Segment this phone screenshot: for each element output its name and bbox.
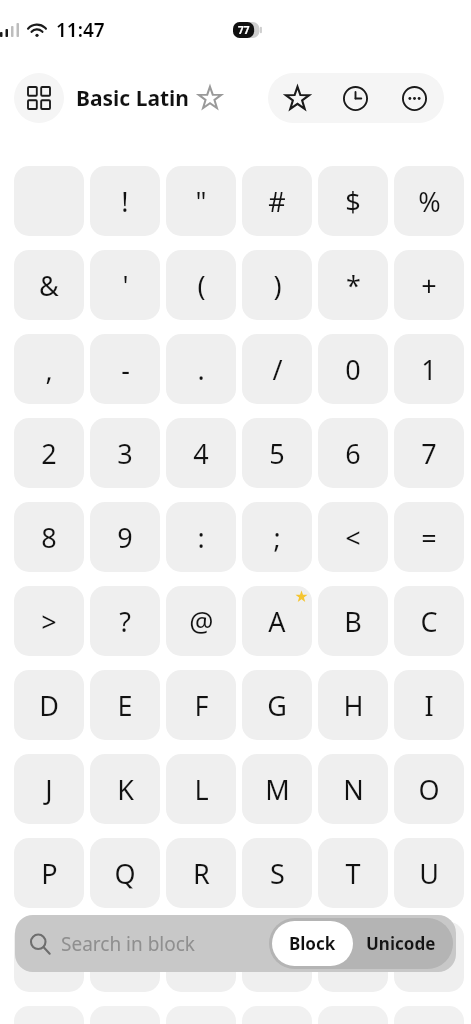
- button[interactable]: ': [90, 250, 160, 320]
- staticText: O: [418, 771, 440, 808]
- button[interactable]: G: [242, 670, 312, 740]
- button[interactable]: ?: [90, 586, 160, 656]
- button[interactable]: M: [242, 754, 312, 824]
- button[interactable]: Y: [242, 922, 312, 992]
- button[interactable]: Q: [90, 838, 160, 908]
- button[interactable]: ,: [14, 334, 84, 404]
- button[interactable]: @: [166, 586, 236, 656]
- button[interactable]: \: [14, 1006, 84, 1024]
- button[interactable]: 9: [90, 502, 160, 572]
- button[interactable]: !: [90, 166, 160, 236]
- staticText: .: [197, 351, 205, 388]
- button[interactable]: /: [242, 334, 312, 404]
- staticText: Unicode: [366, 932, 436, 955]
- button[interactable]: ": [166, 166, 236, 236]
- staticText: Block: [289, 932, 336, 955]
- button[interactable]: .: [166, 334, 236, 404]
- button[interactable]: [: [394, 922, 464, 992]
- button[interactable]: [14, 166, 84, 236]
- button[interactable]: A: [242, 586, 312, 656]
- button[interactable]: J: [14, 754, 84, 824]
- button[interactable]: Recent: [326, 73, 384, 123]
- button[interactable]: Unicode: [356, 921, 453, 966]
- staticText: 1: [421, 351, 437, 388]
- button[interactable]: P: [14, 838, 84, 908]
- button[interactable]: Basic Latin: [76, 84, 190, 113]
- staticText: ": [195, 183, 207, 220]
- button[interactable]: -: [90, 334, 160, 404]
- button[interactable]: H: [318, 670, 388, 740]
- staticText: M: [265, 771, 290, 808]
- button[interactable]: T: [318, 838, 388, 908]
- button[interactable]: a: [394, 1006, 464, 1024]
- staticText: Z: [345, 939, 361, 976]
- button[interactable]: ): [242, 250, 312, 320]
- button[interactable]: 8: [14, 502, 84, 572]
- button[interactable]: 1: [394, 334, 464, 404]
- staticText: Q: [114, 855, 136, 892]
- button[interactable]: 3: [90, 418, 160, 488]
- staticText: H: [343, 687, 364, 724]
- button[interactable]: 2: [14, 418, 84, 488]
- staticText: ,: [45, 351, 53, 388]
- button[interactable]: :: [166, 502, 236, 572]
- button[interactable]: 0: [318, 334, 388, 404]
- button[interactable]: <: [318, 502, 388, 572]
- button[interactable]: Z: [318, 922, 388, 992]
- button[interactable]: =: [394, 502, 464, 572]
- button[interactable]: Block: [272, 921, 353, 966]
- button[interactable]: Favorites: [268, 73, 326, 123]
- button[interactable]: I: [394, 670, 464, 740]
- button[interactable]: &: [14, 250, 84, 320]
- staticText: ': [122, 267, 129, 304]
- staticText: D: [39, 687, 59, 724]
- button[interactable]: >: [14, 586, 84, 656]
- button[interactable]: O: [394, 754, 464, 824]
- staticText: ;: [273, 519, 281, 556]
- button[interactable]: 7: [394, 418, 464, 488]
- button[interactable]: More options: [384, 73, 444, 123]
- button[interactable]: 6: [318, 418, 388, 488]
- button[interactable]: ;: [242, 502, 312, 572]
- button[interactable]: *: [318, 250, 388, 320]
- staticText: %: [418, 183, 441, 220]
- button[interactable]: +: [394, 250, 464, 320]
- staticText: [: [425, 939, 434, 976]
- button[interactable]: D: [14, 670, 84, 740]
- button[interactable]: X: [166, 922, 236, 992]
- button[interactable]: C: [394, 586, 464, 656]
- button[interactable]: V: [14, 922, 84, 992]
- button[interactable]: Blocks: [14, 73, 64, 123]
- button[interactable]: S: [242, 838, 312, 908]
- button[interactable]: _: [242, 1006, 312, 1024]
- button[interactable]: `: [318, 1006, 388, 1024]
- button[interactable]: ]: [90, 1006, 160, 1024]
- button[interactable]: Search in block: [15, 915, 269, 972]
- button[interactable]: R: [166, 838, 236, 908]
- button[interactable]: B: [318, 586, 388, 656]
- button[interactable]: $: [318, 166, 388, 236]
- button[interactable]: E: [90, 670, 160, 740]
- button[interactable]: K: [90, 754, 160, 824]
- staticText: N: [343, 771, 364, 808]
- button[interactable]: #: [242, 166, 312, 236]
- button[interactable]: U: [394, 838, 464, 908]
- button[interactable]: Favorite block: [197, 85, 223, 111]
- button[interactable]: %: [394, 166, 464, 236]
- button[interactable]: N: [318, 754, 388, 824]
- staticText: (: [197, 267, 206, 304]
- button[interactable]: W: [90, 922, 160, 992]
- staticText: ): [273, 267, 282, 304]
- button[interactable]: ^: [166, 1006, 236, 1024]
- button[interactable]: 5: [242, 418, 312, 488]
- button[interactable]: (: [166, 250, 236, 320]
- button[interactable]: 4: [166, 418, 236, 488]
- button[interactable]: F: [166, 670, 236, 740]
- button[interactable]: L: [166, 754, 236, 824]
- staticText: G: [267, 687, 287, 724]
- staticText: >: [41, 603, 57, 640]
